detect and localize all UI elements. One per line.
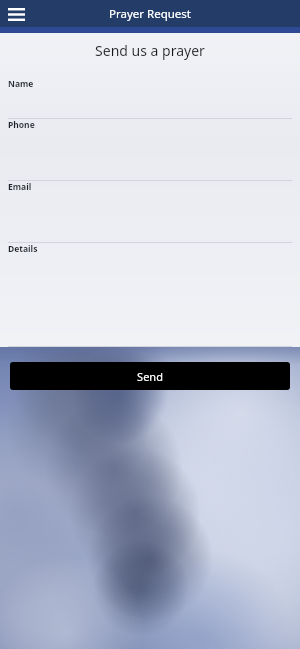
button[interactable]: Details xyxy=(0,243,300,313)
staticText: Send us a prayer xyxy=(0,41,300,60)
staticText: Phone xyxy=(8,119,35,131)
staticText: Details xyxy=(8,243,38,255)
button[interactable]: Email xyxy=(0,181,300,243)
button[interactable]: Phone xyxy=(0,119,300,181)
button[interactable]: Open navigation menu xyxy=(4,2,28,26)
staticText: Name xyxy=(8,78,34,90)
staticText: Send xyxy=(137,369,163,384)
staticText: Prayer Request xyxy=(109,6,191,22)
button[interactable]: Send xyxy=(10,362,290,390)
staticText: Email xyxy=(8,181,32,193)
button[interactable]: Name xyxy=(0,78,300,119)
